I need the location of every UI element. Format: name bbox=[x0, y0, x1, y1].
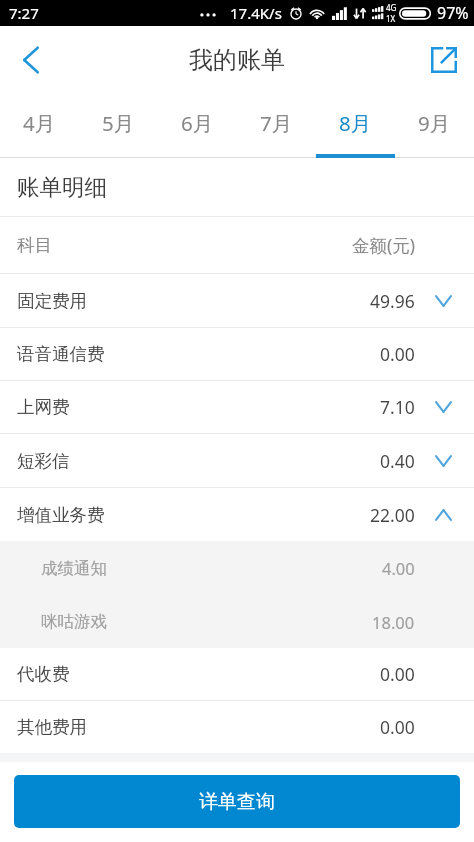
staticText: 短彩信 bbox=[17, 450, 70, 472]
staticText: 0.00 bbox=[380, 715, 415, 739]
staticText: 0.40 bbox=[380, 449, 415, 473]
staticText: 金额(元) bbox=[352, 233, 415, 257]
staticText: 97% bbox=[437, 2, 469, 24]
staticText: 账单明细 bbox=[17, 173, 107, 201]
button[interactable]: 增值业务费 bbox=[0, 488, 474, 541]
staticText: 语音通信费 bbox=[17, 343, 105, 365]
button[interactable]: 5月 bbox=[79, 94, 158, 151]
staticText: 增值业务费 bbox=[17, 504, 105, 526]
staticText: 4.00 bbox=[382, 557, 415, 579]
staticText: 22.00 bbox=[370, 503, 415, 527]
staticText: 8月 bbox=[339, 109, 372, 137]
staticText: 咪咕游戏 bbox=[41, 611, 107, 632]
button[interactable]: 其他费用 bbox=[0, 701, 474, 753]
button[interactable]: 成绩通知 bbox=[0, 541, 474, 595]
staticText: 科目 bbox=[17, 234, 52, 256]
staticText: 0.00 bbox=[380, 662, 415, 686]
button[interactable]: 代收费 bbox=[0, 648, 474, 700]
button[interactable]: 上网费 bbox=[0, 381, 474, 433]
button[interactable]: 7月 bbox=[237, 94, 316, 151]
staticText: 1X bbox=[386, 13, 396, 24]
button[interactable]: 科目 bbox=[0, 217, 474, 273]
staticText: 6月 bbox=[181, 109, 214, 137]
staticText: 代收费 bbox=[17, 663, 70, 685]
staticText: 其他费用 bbox=[17, 716, 87, 738]
staticText: 固定费用 bbox=[17, 290, 87, 312]
staticText: 7:27 bbox=[9, 3, 39, 23]
button[interactable]: 咪咕游戏 bbox=[0, 595, 474, 648]
button[interactable]: 4月 bbox=[0, 94, 79, 151]
staticText: 详单查询 bbox=[199, 790, 275, 814]
staticText: 4G bbox=[386, 2, 397, 13]
staticText: 上网费 bbox=[17, 396, 70, 418]
staticText: 成绩通知 bbox=[41, 558, 107, 579]
staticText: 49.96 bbox=[370, 289, 415, 313]
staticText: 我的账单 bbox=[189, 45, 285, 75]
button[interactable]: 固定费用 bbox=[0, 274, 474, 327]
button[interactable]: Share bbox=[422, 38, 466, 82]
button[interactable]: 语音通信费 bbox=[0, 328, 474, 380]
staticText: 5月 bbox=[102, 109, 135, 137]
staticText: 9月 bbox=[418, 109, 451, 137]
button[interactable]: Back bbox=[7, 36, 55, 84]
button[interactable]: 6月 bbox=[158, 94, 237, 151]
button[interactable]: 9月 bbox=[395, 94, 474, 151]
staticText: 7.10 bbox=[380, 395, 415, 419]
button[interactable]: 8月 bbox=[316, 94, 395, 151]
staticText: 4月 bbox=[23, 109, 56, 137]
button[interactable]: 详单查询 bbox=[14, 775, 460, 828]
staticText: 0.00 bbox=[380, 342, 415, 366]
staticText: 18.00 bbox=[372, 611, 415, 633]
staticText: 17.4K/s bbox=[230, 3, 282, 23]
staticText: 7月 bbox=[260, 109, 293, 137]
button[interactable]: 短彩信 bbox=[0, 434, 474, 487]
